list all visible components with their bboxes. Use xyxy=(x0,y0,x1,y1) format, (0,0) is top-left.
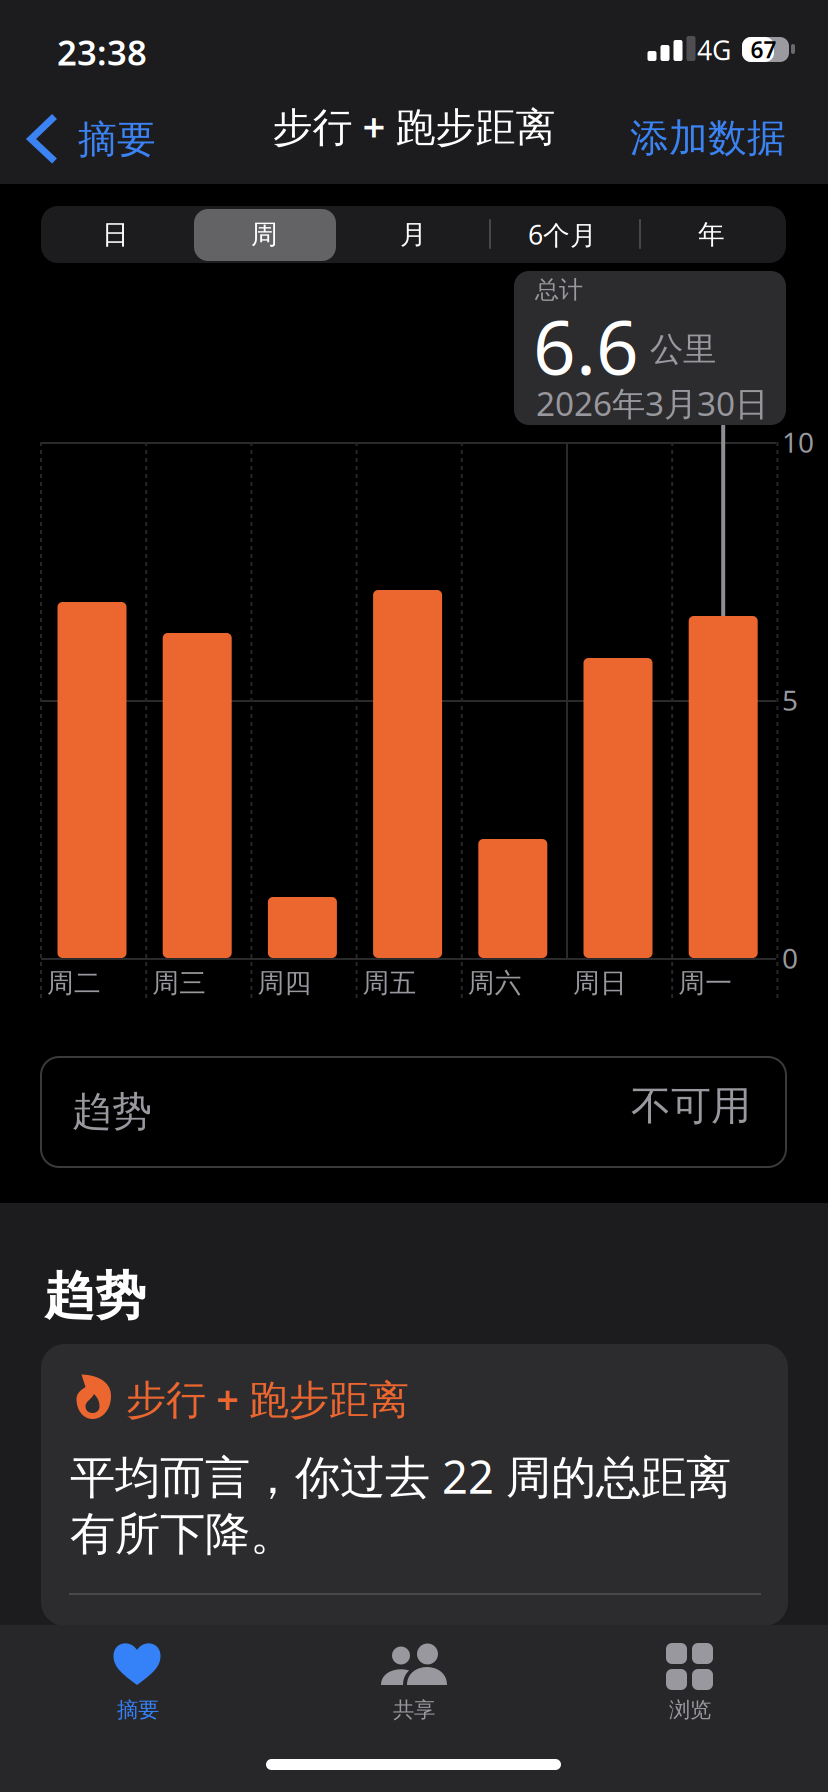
staticText: 67 xyxy=(750,34,776,64)
button[interactable]: 摘要 xyxy=(0,1625,276,1745)
staticText: 浏览 xyxy=(669,1697,711,1723)
staticText: 周五 xyxy=(363,967,417,999)
staticText: 总计 xyxy=(535,275,583,304)
button[interactable]: 年 xyxy=(637,206,786,263)
staticText: 月 xyxy=(400,218,427,251)
staticText: 公里 xyxy=(650,329,716,370)
staticText: 添加数据 xyxy=(630,114,786,162)
staticText: 5 xyxy=(782,681,798,719)
button[interactable]: 浏览 xyxy=(552,1625,828,1745)
staticText: 步行 + 跑步距离 xyxy=(272,99,555,152)
staticText: 6个月 xyxy=(528,217,597,252)
button[interactable]: 添加数据 xyxy=(586,92,786,184)
staticText: 周六 xyxy=(468,967,522,999)
button[interactable]: 摘要 xyxy=(0,92,180,184)
staticText: 趋势 xyxy=(44,1265,146,1327)
staticText: 0 xyxy=(782,939,798,977)
staticText: 23:38 xyxy=(57,29,147,75)
staticText: 周四 xyxy=(257,967,311,999)
staticText: 周日 xyxy=(573,967,627,999)
staticText: 日 xyxy=(102,218,129,251)
staticText: 2026年3月30日 xyxy=(536,381,768,425)
staticText: 周 xyxy=(251,218,278,251)
staticText: 周一 xyxy=(678,967,732,999)
button[interactable]: 趋势 xyxy=(41,1057,786,1167)
staticText: 摘要 xyxy=(117,1697,159,1723)
button[interactable]: 共享 xyxy=(276,1625,552,1745)
button[interactable]: 周 xyxy=(190,206,339,263)
staticText: 不可用 xyxy=(631,1081,751,1130)
staticText: 步行 + 跑步距离 xyxy=(126,1372,409,1425)
staticText: 年 xyxy=(698,218,725,251)
staticText: 10 xyxy=(782,423,814,461)
staticText: 周二 xyxy=(47,967,101,999)
staticText: 平均而言，你过去 22 周的总距离有所下降。 xyxy=(70,1446,731,1562)
button[interactable]: 月 xyxy=(339,206,488,263)
staticText: 4G xyxy=(697,32,731,68)
staticText: 共享 xyxy=(393,1697,435,1723)
button[interactable]: 6个月 xyxy=(488,206,637,263)
staticText: 趋势 xyxy=(72,1087,152,1136)
staticText: 周三 xyxy=(152,967,206,999)
staticText: 摘要 xyxy=(78,116,156,163)
staticText: 6.6 xyxy=(533,296,639,395)
button[interactable]: 日 xyxy=(41,206,190,263)
